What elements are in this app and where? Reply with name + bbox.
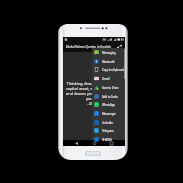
button[interactable]: Add to Tasks bbox=[92, 92, 125, 101]
button[interactable]: LinkedIn bbox=[92, 118, 125, 127]
button[interactable]: WhatsApp bbox=[92, 100, 125, 109]
button[interactable]: Share bbox=[115, 43, 124, 52]
staticText: Save to Drive bbox=[102, 86, 119, 90]
staticText: Thinking should become your capital asse… bbox=[65, 81, 123, 101]
staticText: Copy to clipboard bbox=[102, 68, 125, 72]
button[interactable]: Messenger bbox=[92, 109, 125, 118]
staticText: Add to Tasks bbox=[102, 95, 118, 99]
staticText: LinkedIn bbox=[102, 121, 113, 125]
button[interactable]: SHAREit bbox=[92, 135, 125, 144]
button[interactable]: Back bbox=[72, 140, 81, 146]
button[interactable]: Bluetooth bbox=[92, 57, 125, 66]
staticText: Messaging bbox=[102, 51, 116, 55]
staticText: WhatsApp bbox=[102, 103, 115, 107]
button[interactable]: Telegram bbox=[92, 126, 125, 135]
staticText: Bluetooth bbox=[102, 60, 115, 64]
button[interactable]: Messaging bbox=[92, 48, 125, 57]
button[interactable]: Save to Drive bbox=[92, 83, 125, 92]
staticText: - Dr. A.P.J. Abdul Kalam bbox=[65, 101, 123, 106]
button[interactable]: Copy to clipboard bbox=[92, 65, 125, 74]
staticText: Telegram bbox=[102, 129, 114, 133]
staticText: Abdul Kalam Quotes in English bbox=[66, 45, 115, 49]
button[interactable]: Gmail bbox=[92, 74, 125, 83]
button[interactable]: Home bbox=[90, 140, 99, 146]
staticText: SHAREit bbox=[102, 138, 113, 142]
staticText: Gmail bbox=[102, 77, 110, 81]
button[interactable]: Recents bbox=[107, 140, 116, 146]
staticText: Messenger bbox=[102, 112, 116, 116]
